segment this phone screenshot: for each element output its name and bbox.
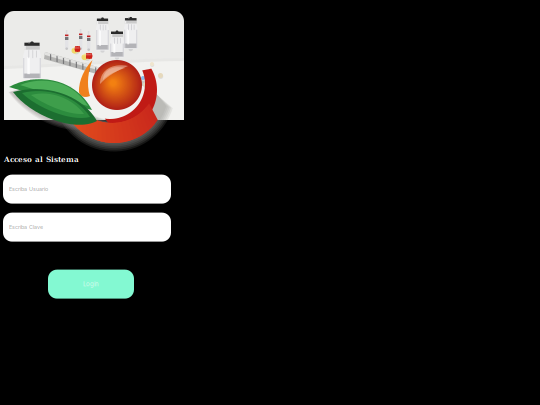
staticText: Escriba Usuario (9, 186, 48, 192)
staticText: Escriba Clave (9, 224, 43, 230)
button[interactable]: Login (48, 270, 134, 299)
staticText: Login (83, 280, 99, 288)
button[interactable]: Escriba Usuario (3, 175, 171, 204)
staticText: Acceso al Sistema (4, 155, 79, 164)
button[interactable]: Escriba Clave (3, 213, 171, 242)
